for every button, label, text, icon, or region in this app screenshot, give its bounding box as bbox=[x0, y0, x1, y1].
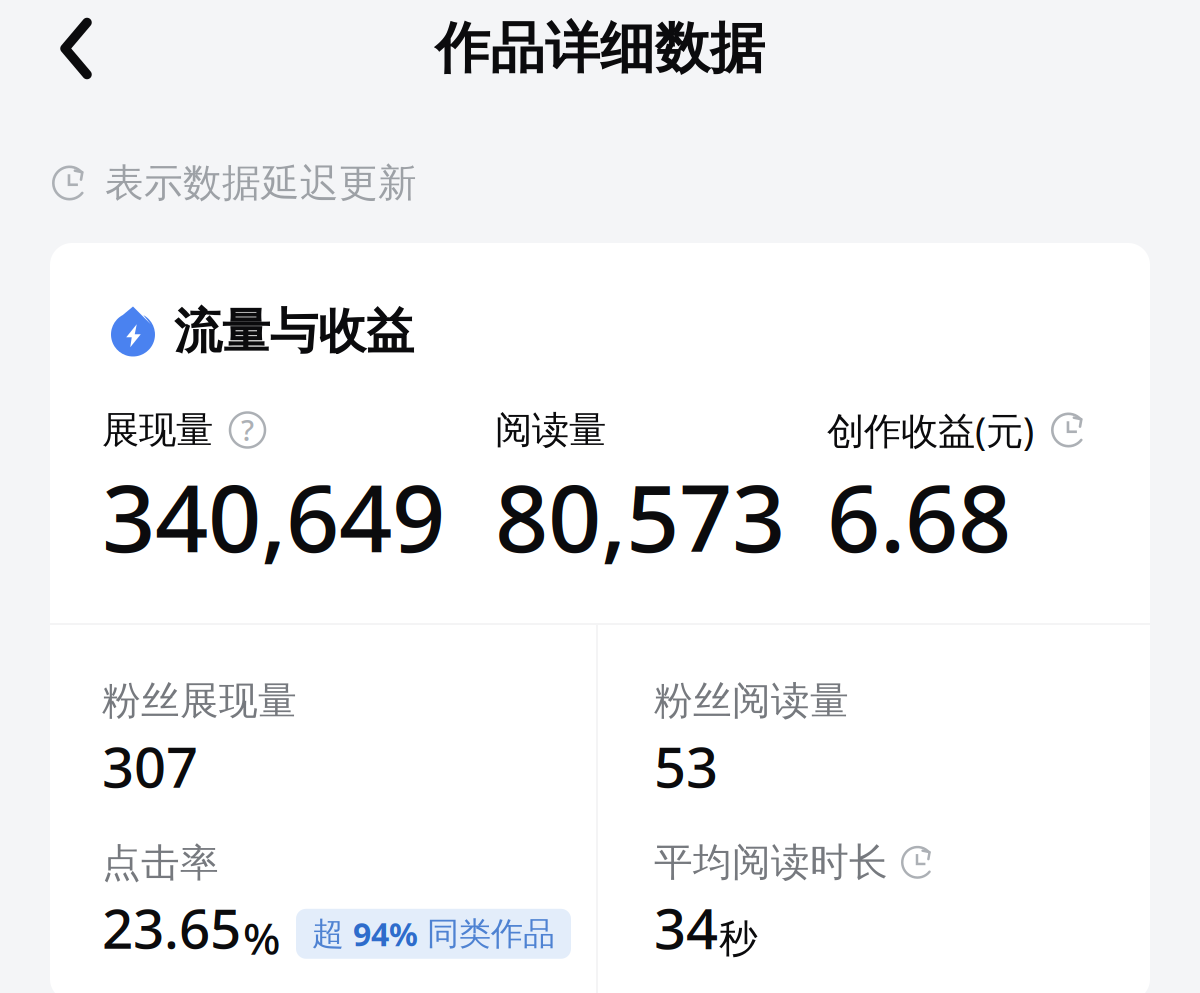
button[interactable]: 创作收益(元) bbox=[827, 412, 1086, 562]
staticText: 307 bbox=[102, 729, 198, 803]
staticText: 点击率 bbox=[102, 839, 219, 887]
staticText: 80,573 bbox=[495, 454, 785, 578]
staticText: 粉丝展现量 bbox=[102, 677, 297, 725]
staticText: ? bbox=[241, 410, 254, 449]
staticText: 超 bbox=[312, 914, 344, 953]
staticText: 粉丝阅读量 bbox=[654, 677, 849, 725]
staticText: 秒 bbox=[719, 915, 758, 963]
button[interactable]: 粉丝阅读量 bbox=[654, 690, 849, 795]
button[interactable]: About impressions bbox=[230, 412, 265, 447]
button[interactable]: Back bbox=[0, 5, 116, 91]
staticText: 340,649 bbox=[102, 454, 445, 578]
staticText: 创作收益(元) bbox=[827, 405, 1034, 455]
button[interactable]: 阅读量 bbox=[495, 412, 827, 562]
button[interactable]: 展现量 bbox=[102, 412, 495, 562]
staticText: 同类作品 bbox=[427, 914, 555, 953]
staticText: 阅读量 bbox=[495, 407, 606, 453]
button[interactable]: 点击率 bbox=[102, 850, 571, 958]
button[interactable]: 平均阅读时长 bbox=[654, 850, 934, 958]
button[interactable]: 粉丝展现量 bbox=[102, 690, 297, 795]
staticText: 34 bbox=[654, 890, 718, 965]
staticText: 94% bbox=[353, 913, 418, 955]
staticText: 展现量 bbox=[102, 407, 213, 453]
staticText: % bbox=[243, 908, 280, 967]
staticText: 平均阅读时长 bbox=[654, 839, 888, 886]
staticText: 表示数据延迟更新 bbox=[105, 159, 417, 207]
staticText: 23.65 bbox=[102, 891, 241, 964]
staticText: 作品详细数据 bbox=[435, 15, 765, 82]
staticText: 流量与收益 bbox=[174, 302, 414, 361]
staticText: 53 bbox=[654, 729, 718, 803]
staticText: 6.68 bbox=[827, 454, 1011, 578]
